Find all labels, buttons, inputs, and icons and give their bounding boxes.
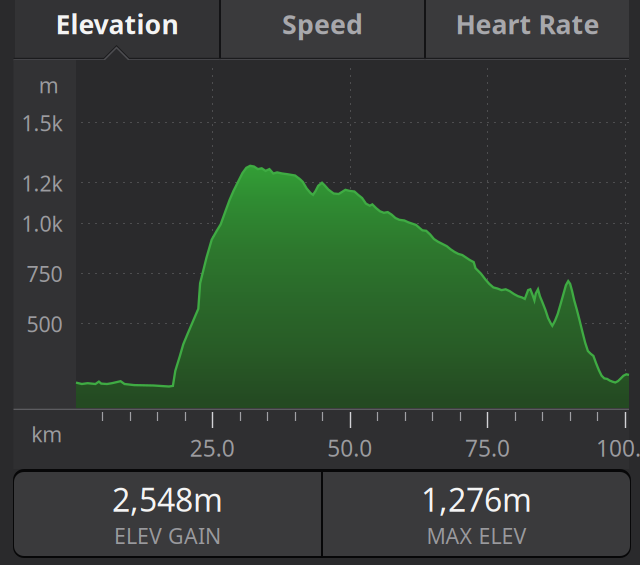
staticText: km: [31, 420, 62, 448]
staticText: 25.0: [190, 433, 235, 463]
staticText: Heart Rate: [455, 6, 599, 42]
staticText: 75.0: [465, 433, 510, 463]
button[interactable]: 1,276m: [323, 472, 630, 556]
staticText: 1.0k: [21, 209, 62, 238]
button[interactable]: Speed: [221, 0, 424, 60]
button[interactable]: Heart Rate: [426, 0, 629, 60]
staticText: m: [39, 71, 59, 99]
staticText: 1.2k: [21, 169, 62, 197]
staticText: 2,548m: [112, 478, 223, 521]
staticText: 100.0: [596, 433, 640, 463]
staticText: 50.0: [327, 433, 372, 463]
staticText: 750: [26, 260, 62, 288]
button[interactable]: 2,548m: [14, 472, 321, 556]
staticText: 1,276m: [421, 478, 532, 521]
button[interactable]: Elevation: [15, 0, 219, 60]
staticText: Elevation: [55, 6, 178, 42]
staticText: MAX ELEV: [426, 522, 526, 550]
staticText: ELEV GAIN: [114, 522, 221, 550]
staticText: 500: [26, 310, 62, 338]
staticText: 1.5k: [21, 109, 62, 137]
staticText: Speed: [282, 6, 363, 42]
